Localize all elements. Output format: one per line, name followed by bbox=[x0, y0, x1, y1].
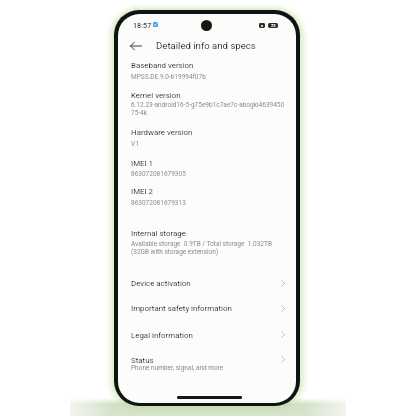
button[interactable] bbox=[118, 297, 296, 322]
button[interactable] bbox=[118, 123, 296, 150]
button[interactable] bbox=[118, 57, 296, 84]
button[interactable] bbox=[118, 86, 296, 121]
staticText: 863072081679305 bbox=[131, 170, 186, 178]
staticText: Available storage 0.9TB / Total storage … bbox=[131, 240, 272, 256]
staticText: Important safety information bbox=[131, 304, 232, 313]
staticText: Status bbox=[131, 356, 154, 365]
staticText: V1 bbox=[131, 140, 139, 148]
button[interactable] bbox=[118, 348, 296, 376]
button[interactable] bbox=[118, 323, 296, 348]
staticText: Device activation bbox=[131, 279, 191, 288]
staticText: Baseband version bbox=[131, 61, 194, 70]
staticText: 6.12.23-android16-5-g75e9b1c7ae7c-abogki… bbox=[131, 101, 285, 117]
staticText: IMEI 1 bbox=[131, 159, 154, 168]
button[interactable]: Back bbox=[123, 34, 149, 58]
staticText: Phone number, signal, and more bbox=[131, 364, 224, 372]
staticText: Internal storage bbox=[131, 229, 186, 238]
button[interactable] bbox=[118, 271, 296, 296]
staticText: 863072081679313 bbox=[131, 199, 186, 207]
button[interactable] bbox=[118, 224, 296, 259]
staticText: Legal information bbox=[131, 331, 193, 340]
staticText: MPSS.DE.9.0-b19994f07b bbox=[131, 73, 206, 81]
staticText: 72 bbox=[271, 23, 276, 28]
staticText: Hardware version bbox=[131, 128, 193, 137]
staticText: Detailed info and specs bbox=[156, 40, 256, 51]
staticText: 18:57 bbox=[133, 21, 152, 29]
button[interactable] bbox=[118, 182, 296, 210]
staticText: IMEI 2 bbox=[131, 187, 154, 196]
button[interactable] bbox=[118, 153, 296, 181]
staticText: Kernel version bbox=[131, 91, 181, 100]
